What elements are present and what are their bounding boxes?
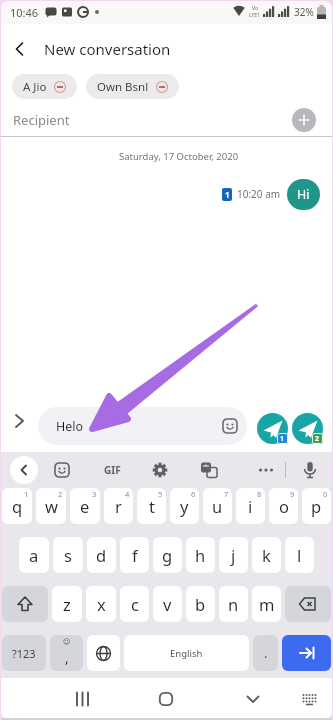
button[interactable]: s bbox=[53, 537, 83, 573]
staticText: i bbox=[248, 495, 253, 517]
staticText: A Jio bbox=[23, 79, 47, 95]
button[interactable] bbox=[87, 635, 120, 671]
staticText: New conversation bbox=[44, 39, 171, 59]
staticText: 0 bbox=[323, 489, 328, 499]
staticText: 2 bbox=[315, 434, 320, 444]
staticText: z bbox=[63, 593, 71, 615]
staticText: d bbox=[96, 544, 107, 566]
button[interactable] bbox=[0, 30, 40, 68]
staticText: 4 bbox=[125, 489, 130, 499]
staticText: ?123 bbox=[12, 646, 36, 661]
staticText: y bbox=[180, 495, 189, 517]
staticText: . bbox=[264, 644, 268, 662]
staticText: Own Bsnl bbox=[97, 79, 149, 95]
button[interactable] bbox=[10, 456, 38, 484]
staticText: Hi bbox=[297, 186, 310, 203]
staticText: 5 bbox=[158, 489, 163, 499]
staticText: , bbox=[65, 648, 69, 667]
staticText: 10:46 bbox=[10, 5, 39, 20]
button[interactable]: l bbox=[285, 537, 314, 573]
staticText: o bbox=[279, 495, 289, 517]
button[interactable]: j bbox=[219, 537, 248, 573]
button[interactable] bbox=[294, 684, 324, 714]
button[interactable]: o bbox=[269, 488, 298, 524]
staticText: 2 bbox=[58, 489, 63, 499]
button[interactable]: q bbox=[2, 488, 32, 524]
staticText: Recipient bbox=[13, 111, 70, 129]
staticText: 8 bbox=[257, 489, 262, 499]
staticText: f bbox=[132, 544, 138, 566]
button[interactable]: d bbox=[87, 537, 116, 573]
staticText: g bbox=[162, 544, 173, 566]
staticText: w bbox=[45, 495, 58, 517]
staticText: x bbox=[97, 593, 106, 615]
button[interactable]: m bbox=[252, 586, 281, 622]
button[interactable]: Recipient bbox=[0, 103, 333, 137]
button[interactable]: h bbox=[186, 537, 215, 573]
button[interactable]: f bbox=[120, 537, 149, 573]
button[interactable]: Own Bsnl bbox=[86, 74, 179, 99]
button[interactable] bbox=[292, 413, 323, 444]
staticText: s bbox=[64, 544, 72, 566]
staticText: 3 bbox=[92, 489, 97, 499]
button[interactable]: Hi bbox=[287, 179, 320, 210]
staticText: r bbox=[115, 495, 122, 517]
button[interactable] bbox=[251, 455, 281, 485]
staticText: Vo bbox=[252, 5, 258, 12]
button[interactable]: . bbox=[253, 635, 278, 671]
button[interactable]: GIF bbox=[97, 455, 127, 485]
staticText: 1 bbox=[280, 434, 285, 444]
staticText: m bbox=[259, 593, 275, 615]
button[interactable] bbox=[2, 586, 48, 622]
button[interactable]: t bbox=[137, 488, 166, 524]
button[interactable] bbox=[295, 455, 325, 485]
staticText: Saturday, 17 October, 2020 bbox=[119, 150, 239, 163]
staticText: 1 bbox=[225, 189, 230, 200]
button[interactable] bbox=[292, 108, 316, 132]
button[interactable]: i bbox=[236, 488, 265, 524]
button[interactable]: b bbox=[186, 586, 215, 622]
button[interactable] bbox=[238, 684, 268, 714]
staticText: 1 bbox=[24, 489, 29, 499]
button[interactable]: y bbox=[170, 488, 199, 524]
button[interactable]: n bbox=[219, 586, 248, 622]
button[interactable] bbox=[257, 413, 288, 444]
button[interactable]: x bbox=[86, 586, 116, 622]
button[interactable]: r bbox=[104, 488, 133, 524]
button[interactable] bbox=[282, 635, 331, 671]
staticText: GIF bbox=[104, 463, 121, 477]
button[interactable]: k bbox=[252, 537, 281, 573]
button[interactable] bbox=[68, 684, 98, 714]
button[interactable]: Helo bbox=[38, 407, 247, 445]
staticText: l bbox=[297, 544, 302, 566]
staticText: u bbox=[212, 495, 223, 517]
button[interactable] bbox=[47, 455, 77, 485]
button[interactable] bbox=[145, 455, 175, 485]
button[interactable]: z bbox=[52, 586, 82, 622]
button[interactable]: A Jio bbox=[12, 74, 77, 99]
staticText: c bbox=[131, 593, 139, 615]
staticText: Helo bbox=[56, 418, 84, 435]
button[interactable]: e bbox=[70, 488, 100, 524]
button[interactable]: a bbox=[19, 537, 49, 573]
staticText: 10:20 am bbox=[237, 187, 281, 201]
button[interactable] bbox=[285, 586, 331, 622]
button[interactable]: ?123 bbox=[2, 635, 46, 671]
button[interactable] bbox=[194, 455, 224, 485]
staticText: English bbox=[170, 647, 203, 660]
button[interactable]: g bbox=[153, 537, 182, 573]
staticText: n bbox=[228, 593, 239, 615]
staticText: h bbox=[195, 544, 206, 566]
button[interactable]: u bbox=[203, 488, 232, 524]
button[interactable]: c bbox=[120, 586, 149, 622]
button[interactable]: v bbox=[153, 586, 182, 622]
staticText: 6 bbox=[191, 489, 196, 499]
staticText: a bbox=[29, 544, 39, 566]
staticText: LTE1 bbox=[249, 12, 260, 19]
staticText: 9 bbox=[290, 489, 295, 499]
button[interactable]: w bbox=[36, 488, 66, 524]
button[interactable]: p bbox=[302, 488, 331, 524]
button[interactable]: English bbox=[124, 635, 249, 671]
button[interactable]: ☺ bbox=[50, 635, 83, 671]
button[interactable] bbox=[151, 684, 181, 714]
